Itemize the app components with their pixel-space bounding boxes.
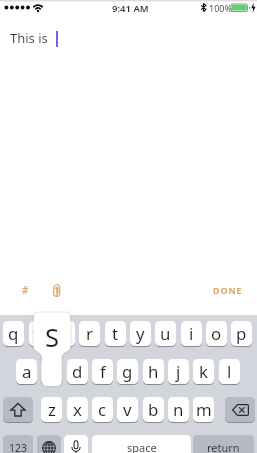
button[interactable]: n [168,397,189,422]
staticText: t [112,322,119,345]
button[interactable]: DONE [213,284,243,296]
staticText: x [73,398,82,421]
button[interactable]: y [130,321,151,346]
button[interactable]: space [92,435,191,453]
button[interactable]: c [92,397,113,422]
staticText: c [98,398,107,421]
button[interactable]: # [22,283,29,297]
button[interactable]: p [231,321,252,346]
button[interactable] [3,397,33,422]
staticText: 100% [209,2,232,14]
button[interactable]: w [29,321,50,346]
button[interactable] [37,435,61,453]
button[interactable] [53,284,61,297]
button[interactable]: q [3,321,24,346]
button[interactable]: h [143,359,164,384]
button[interactable]: r [79,321,100,346]
staticText: u [160,322,171,345]
staticText: f [100,360,106,383]
button[interactable]: i [181,321,202,346]
button[interactable]: v [117,397,138,422]
staticText: a [22,360,32,383]
staticText: 9:41 AM [112,2,149,15]
button[interactable]: k [193,359,214,384]
button[interactable]: l [219,359,240,384]
staticText: z [48,398,56,421]
staticText: i [189,322,194,345]
staticText: q [8,322,19,345]
button[interactable]: u [155,321,176,346]
staticText: p [236,322,247,345]
staticText: v [123,398,132,421]
staticText: r [86,322,93,345]
button[interactable] [225,397,255,422]
staticText: S [45,320,59,355]
staticText: 123 [9,441,28,453]
button[interactable]: 123 [3,435,33,453]
staticText: k [199,360,208,383]
button[interactable]: x [67,397,88,422]
staticText: o [211,322,222,345]
staticText: b [148,398,159,421]
button[interactable]: d [67,359,88,384]
staticText: j [176,360,181,383]
button[interactable]: return [193,435,254,453]
staticText: n [173,398,184,421]
staticText: This is [10,29,48,47]
button[interactable] [64,435,88,453]
staticText: g [122,360,133,383]
button[interactable]: s [41,359,62,384]
button[interactable]: o [206,321,227,346]
button[interactable]: g [117,359,138,384]
staticText: d [72,360,83,383]
button[interactable]: m [193,397,214,422]
staticText: return [207,440,240,453]
button[interactable]: a [16,359,37,384]
button[interactable]: b [143,397,164,422]
staticText: l [227,360,232,383]
staticText: w [33,322,47,345]
staticText: space [127,440,157,453]
button[interactable]: t [105,321,126,346]
button[interactable]: z [41,397,62,422]
button[interactable]: e [54,321,75,346]
staticText: m [196,398,212,421]
staticText: h [148,360,159,383]
button[interactable]: f [92,359,113,384]
staticText: y [136,322,145,345]
button[interactable]: j [168,359,189,384]
